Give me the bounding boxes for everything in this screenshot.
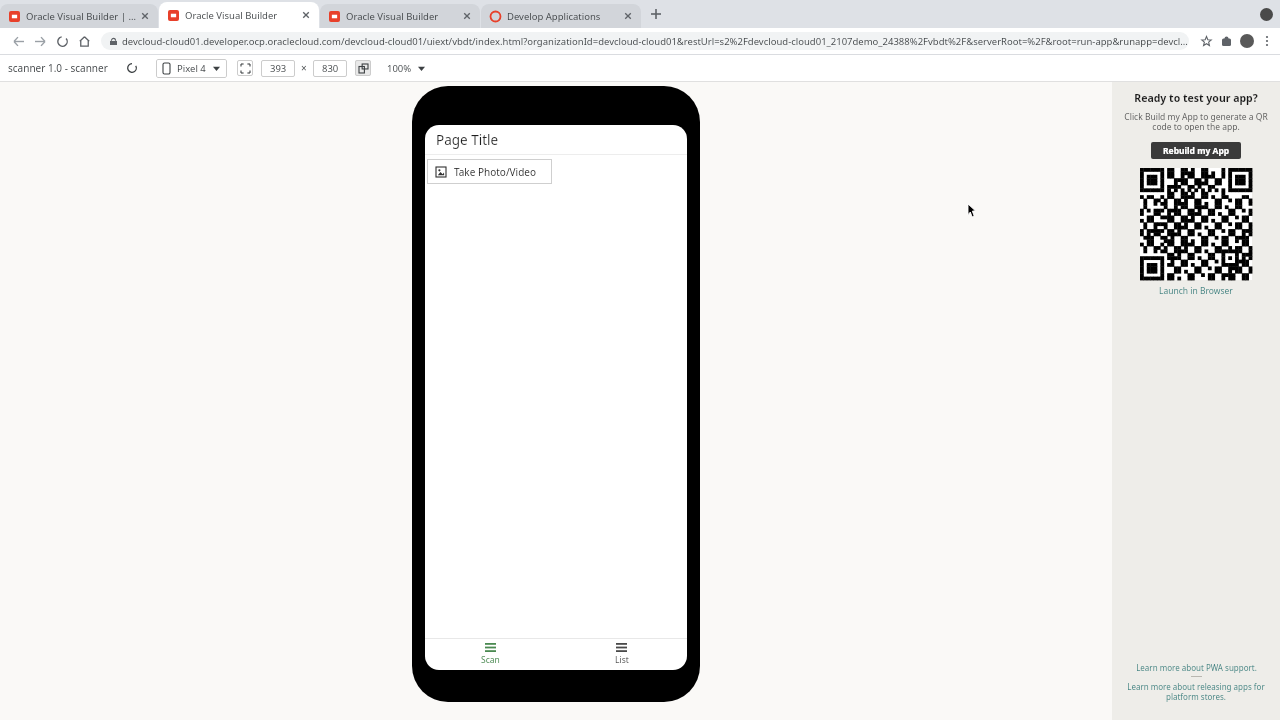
button[interactable]: Resize	[237, 60, 253, 76]
button[interactable]: More options	[1258, 32, 1276, 50]
button[interactable]: Extensions	[1216, 31, 1236, 51]
button[interactable]: Scan	[425, 639, 556, 670]
staticText: Learn more about PWA support.	[1136, 662, 1257, 673]
button[interactable]: New tab	[642, 0, 670, 28]
staticText: Page Title	[436, 131, 499, 149]
staticText: Oracle Visual Builder	[185, 9, 278, 22]
other: Picture	[436, 167, 446, 177]
button[interactable]: 393	[261, 60, 295, 77]
button[interactable]: 830	[313, 60, 347, 77]
staticText: 100%	[387, 62, 412, 75]
button[interactable]: Oracle Visual Builder	[159, 2, 319, 28]
staticText: Oracle Visual Builder	[346, 10, 439, 23]
button[interactable]: Launch in Browser	[1159, 285, 1233, 297]
button[interactable]: Develop Applications	[481, 4, 641, 28]
button[interactable]: Home	[73, 30, 95, 52]
button[interactable]: List	[556, 639, 687, 670]
button[interactable]: Picture	[427, 159, 552, 184]
button[interactable]: Account	[1236, 30, 1258, 52]
button[interactable]: Rebuild my App	[1151, 142, 1241, 159]
button[interactable]: Learn more about releasing apps for plat…	[1122, 681, 1270, 702]
button[interactable]: Learn more about PWA support.	[1136, 662, 1257, 673]
staticText: Rebuild my App	[1163, 145, 1230, 157]
staticText: scanner 1.0 - scanner	[8, 61, 108, 75]
button[interactable]: Oracle Visual Builder	[320, 4, 480, 28]
button[interactable]: Reload	[51, 30, 73, 52]
button[interactable]: Bookmark	[1196, 31, 1216, 51]
staticText: Oracle Visual Builder | devclou	[26, 10, 137, 23]
staticText: List	[615, 654, 629, 666]
staticText: Pixel 4	[177, 62, 206, 75]
staticText: devcloud-cloud01.developer.ocp.oracleclo…	[122, 35, 1188, 48]
staticText: Ready to test your app?	[1134, 91, 1258, 105]
staticText: Click Build my App to generate a QR code…	[1122, 111, 1270, 133]
staticText: Develop Applications	[507, 10, 601, 23]
staticText: Launch in Browser	[1159, 285, 1233, 297]
staticText: ×	[301, 61, 307, 75]
staticText: Learn more about releasing apps for plat…	[1122, 681, 1270, 702]
button[interactable]: devcloud-cloud01.developer.ocp.oracleclo…	[101, 32, 1189, 50]
button[interactable]: Forward	[29, 30, 51, 52]
staticText: 393	[270, 62, 287, 75]
button[interactable]: Rotate device	[355, 60, 371, 76]
button[interactable]: Profile	[1252, 0, 1280, 28]
staticText: Scan	[481, 654, 500, 666]
button[interactable]: Refresh preview	[122, 58, 142, 78]
staticText: Take Photo/Video	[454, 165, 537, 179]
button[interactable]: Pixel 4	[156, 59, 227, 78]
button[interactable]: Oracle Visual Builder | devclou	[0, 4, 158, 28]
button[interactable]: Back	[7, 30, 29, 52]
button[interactable]: 100%	[385, 62, 427, 75]
staticText: 830	[322, 62, 339, 75]
